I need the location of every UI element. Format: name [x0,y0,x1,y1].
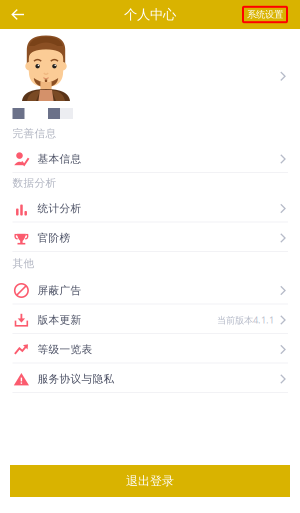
staticText: 版本更新 [37,313,81,326]
button[interactable]: 服务协议与隐私 [0,363,300,393]
button[interactable]: 系统设置 [243,7,300,22]
staticText: 服务协议与隐私 [37,372,114,385]
button[interactable]: 版本更新 [0,304,300,334]
button[interactable]: 官阶榜 [0,222,300,252]
staticText: 完善信息 [12,127,56,140]
staticText: 统计分析 [37,202,81,215]
staticText: 基本信息 [37,152,81,165]
staticText: 个人中心 [124,6,176,23]
staticText: 其他 [12,257,34,270]
staticText: 数据分析 [12,176,56,189]
staticText: 等级一览表 [37,343,92,356]
staticText: 官阶榜 [37,231,70,244]
staticText: 系统设置 [247,9,283,20]
staticText: 当前版本4.1.1 [217,314,274,326]
button[interactable]: 等级一览表 [0,334,300,363]
staticText: 退出登录 [126,474,174,488]
button[interactable]: 统计分析 [0,193,300,222]
button[interactable]: Back [0,0,36,29]
button[interactable]: 退出登录 [10,465,290,497]
button[interactable] [0,29,300,123]
button[interactable]: 屏蔽广告 [0,275,300,304]
staticText: 屏蔽广告 [37,284,81,297]
button[interactable]: 基本信息 [0,143,300,173]
